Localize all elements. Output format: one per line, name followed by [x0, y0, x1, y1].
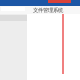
staticText: 文件管理系统 — [33, 7, 63, 14]
